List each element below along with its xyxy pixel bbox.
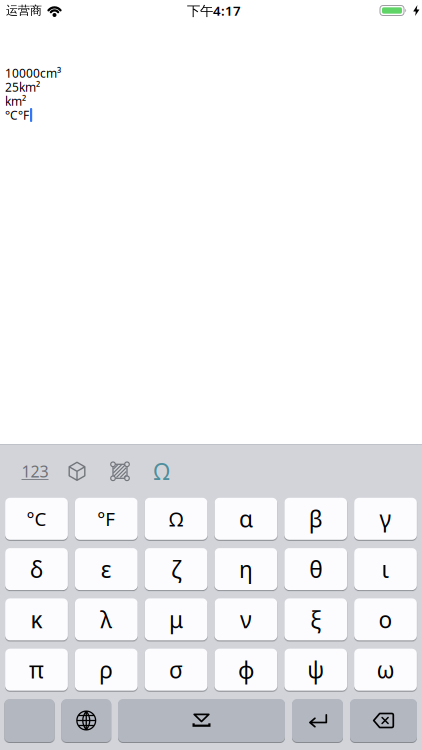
- button[interactable]: Next language: [61, 699, 111, 742]
- staticText: η: [239, 554, 253, 584]
- button[interactable]: β: [284, 498, 347, 540]
- button[interactable]: Cube symbols: [65, 459, 89, 483]
- staticText: φ: [238, 655, 254, 685]
- button[interactable]: ζ: [145, 548, 207, 590]
- button[interactable]: α: [214, 498, 277, 540]
- staticText: λ: [100, 604, 112, 634]
- staticText: Ω: [169, 505, 183, 532]
- button[interactable]: ε: [75, 548, 138, 590]
- button[interactable]: ο: [354, 598, 417, 640]
- button[interactable]: η: [214, 548, 277, 590]
- button[interactable]: Numbers: [22, 458, 48, 484]
- button[interactable]: μ: [145, 598, 207, 640]
- staticText: ι: [381, 554, 389, 584]
- staticText: κ: [30, 604, 42, 634]
- button[interactable]: π: [5, 649, 68, 691]
- button[interactable]: Return: [292, 699, 343, 742]
- button[interactable]: θ: [284, 548, 347, 590]
- button[interactable]: Ω: [145, 498, 207, 540]
- staticText: δ: [30, 554, 43, 584]
- staticText: ω: [376, 655, 394, 685]
- staticText: γ: [379, 504, 391, 534]
- staticText: ο: [378, 604, 392, 634]
- button[interactable]: δ: [5, 548, 68, 590]
- staticText: km²: [5, 93, 26, 109]
- staticText: 10000cm³: [5, 65, 61, 81]
- button[interactable]: Greek symbols: [149, 459, 173, 483]
- button[interactable]: Delete: [350, 699, 417, 742]
- button[interactable]: °F: [75, 498, 138, 540]
- button[interactable]: ν: [214, 598, 277, 640]
- staticText: 123: [21, 461, 48, 482]
- button[interactable]: ξ: [284, 598, 347, 640]
- staticText: σ: [169, 655, 183, 685]
- button[interactable]: °C: [5, 498, 68, 540]
- staticText: ζ: [171, 554, 181, 584]
- staticText: 25km²: [5, 79, 40, 95]
- staticText: Ω: [153, 456, 169, 486]
- staticText: ρ: [99, 655, 113, 685]
- button[interactable]: σ: [145, 649, 207, 691]
- button[interactable]: φ: [214, 649, 277, 691]
- staticText: μ: [169, 604, 183, 634]
- button[interactable]: ω: [354, 649, 417, 691]
- button[interactable]: γ: [354, 498, 417, 540]
- staticText: β: [309, 504, 323, 534]
- button[interactable]: λ: [75, 598, 138, 640]
- button[interactable]: ρ: [75, 649, 138, 691]
- staticText: π: [29, 655, 44, 685]
- button[interactable]: Dismiss keyboard: [118, 699, 285, 742]
- staticText: ξ: [310, 604, 321, 634]
- button[interactable]: κ: [5, 598, 68, 640]
- staticText: °C°F: [5, 107, 29, 123]
- staticText: 运营商: [6, 3, 42, 18]
- staticText: θ: [309, 554, 322, 584]
- button[interactable]: Pattern symbols: [108, 459, 132, 483]
- button[interactable]: ψ: [284, 649, 347, 691]
- staticText: °C: [26, 506, 46, 531]
- staticText: 下午4:17: [187, 2, 241, 19]
- staticText: α: [239, 504, 253, 534]
- staticText: ψ: [307, 655, 324, 685]
- staticText: ε: [101, 554, 112, 584]
- staticText: ν: [240, 604, 252, 634]
- staticText: °F: [97, 506, 115, 531]
- button[interactable]: ι: [354, 548, 417, 590]
